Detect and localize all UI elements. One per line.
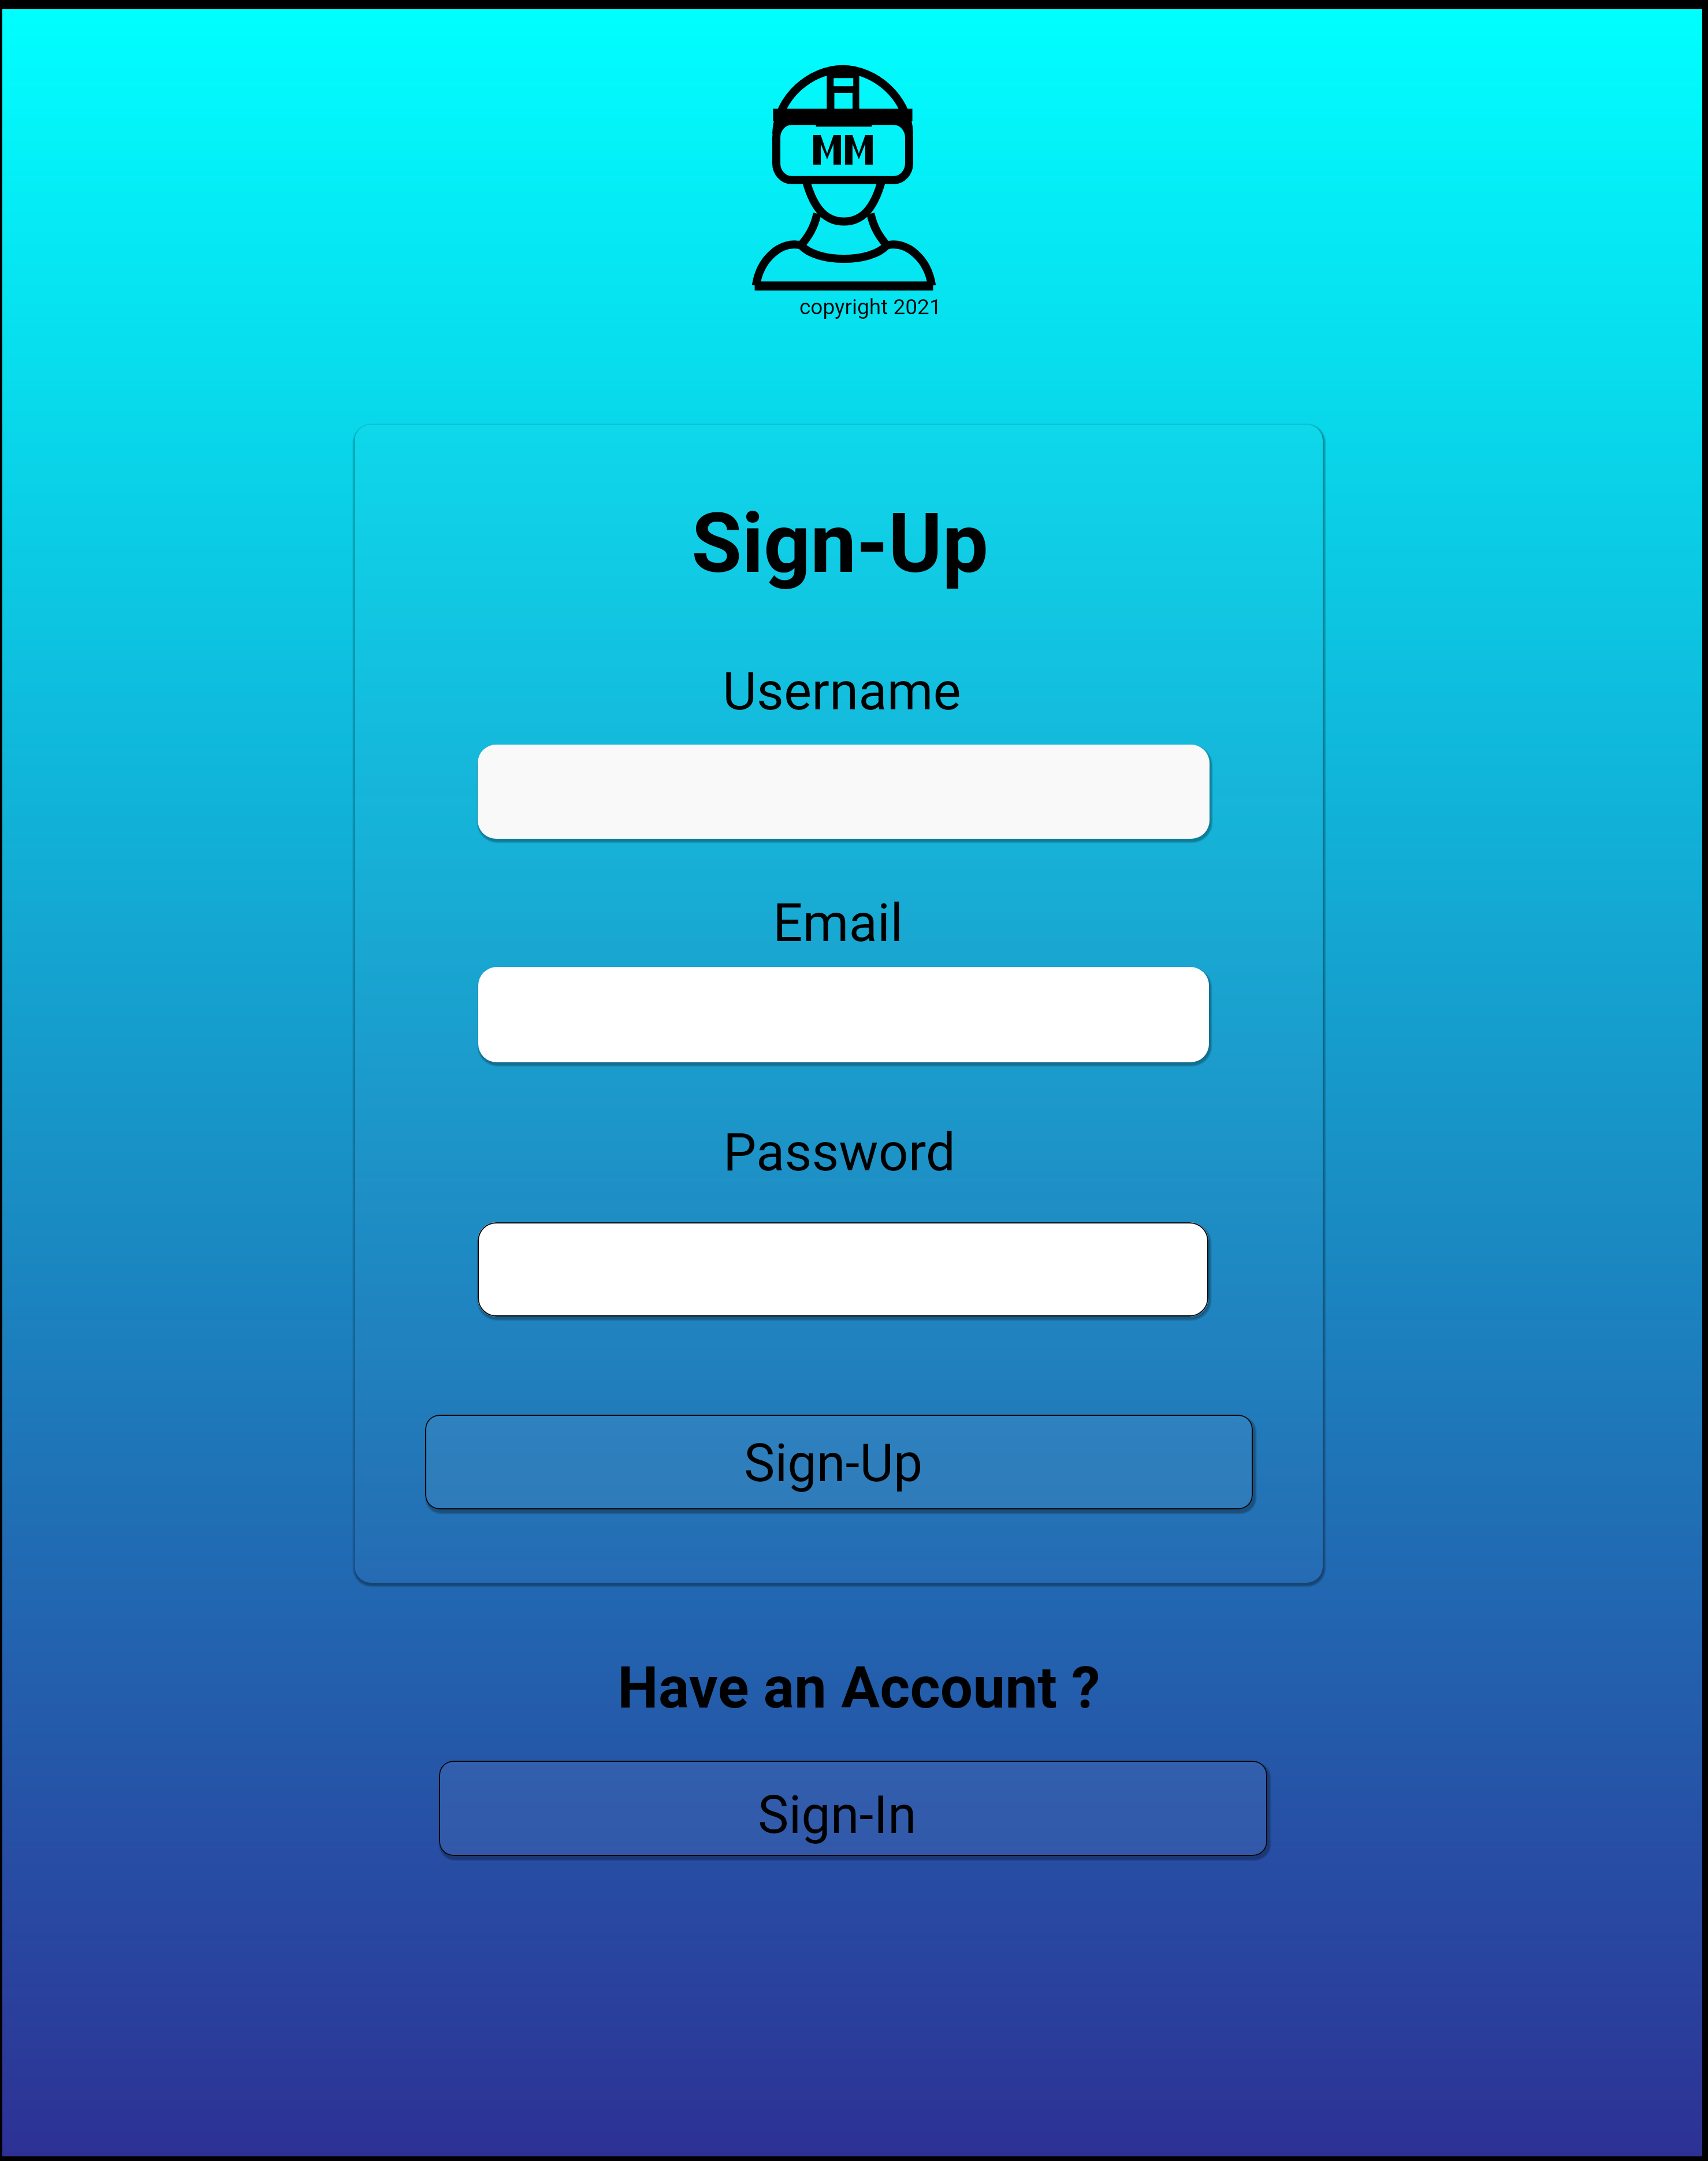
staticText: Email (773, 892, 903, 954)
button[interactable]: Sign-In (439, 1761, 1267, 1856)
staticText: Username (723, 661, 961, 723)
staticText: Sign-Up (691, 496, 989, 592)
staticText: copyright 2021 (799, 295, 942, 319)
staticText: Sign-Up (744, 1433, 923, 1494)
button[interactable]: Sign-Up (425, 1415, 1253, 1509)
staticText: Password (723, 1122, 955, 1184)
button[interactable] (478, 967, 1209, 1062)
staticText: Sign-In (758, 1785, 917, 1846)
button[interactable] (478, 1222, 1208, 1316)
staticText: Have an Account ? (617, 1654, 1100, 1721)
other: App logo (754, 66, 934, 291)
button[interactable] (478, 745, 1210, 839)
